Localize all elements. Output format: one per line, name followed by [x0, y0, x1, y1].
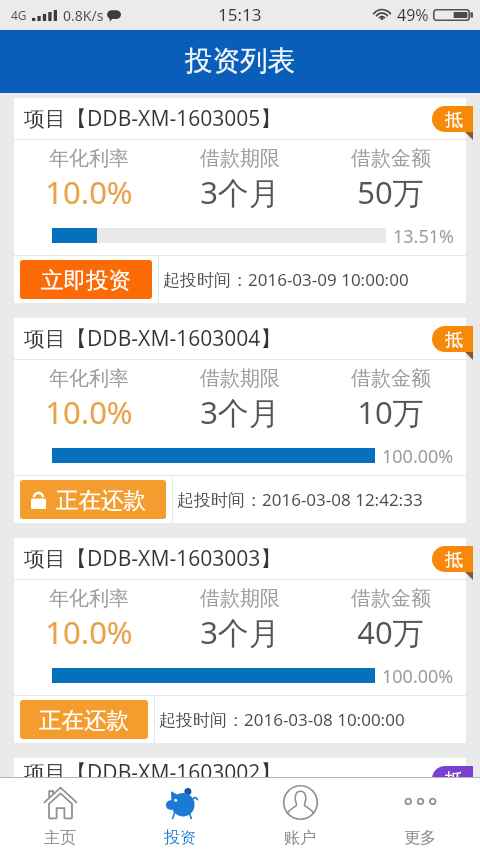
button[interactable]: Home: [0, 778, 120, 853]
staticText: 10万: [357, 391, 424, 433]
staticText: 49%: [397, 4, 429, 26]
staticText: 100.00%: [382, 444, 454, 466]
staticText: 年化利率: [49, 146, 129, 171]
staticText: 正在还款: [39, 706, 129, 734]
staticText: 起投时间：2016-03-08 10:00:00: [159, 708, 405, 731]
button[interactable]: 项目【DDB-XM-1603004】: [14, 318, 466, 523]
staticText: 40万: [357, 611, 424, 653]
staticText: 项目【DDB-XM-1603003】: [24, 544, 282, 573]
staticText: 借款金额: [351, 586, 431, 611]
button[interactable]: 项目【DDB-XM-1603002】: [14, 758, 466, 777]
staticText: 项目【DDB-XM-1603004】: [24, 324, 282, 353]
staticText: 3个月: [200, 611, 280, 653]
staticText: 3个月: [200, 391, 280, 433]
button[interactable]: Invest: [120, 778, 240, 853]
staticText: 借款期限: [200, 366, 280, 391]
button[interactable]: 正在还款: [20, 700, 148, 739]
button[interactable]: 立即投资: [20, 260, 152, 299]
staticText: 10.0%: [45, 611, 133, 653]
button[interactable]: Account: [240, 778, 360, 853]
staticText: 年化利率: [49, 586, 129, 611]
staticText: 13.51%: [393, 224, 454, 246]
staticText: 抵: [445, 109, 463, 132]
staticText: 0.8K/s: [63, 6, 104, 25]
staticText: 立即投资: [41, 266, 131, 294]
staticText: 4G: [11, 7, 27, 23]
staticText: 借款期限: [200, 146, 280, 171]
staticText: 50万: [357, 171, 424, 213]
staticText: 10.0%: [45, 391, 133, 433]
staticText: 投资: [164, 828, 196, 848]
staticText: 抵: [445, 769, 463, 785]
button[interactable]: 正在还款: [20, 480, 166, 519]
staticText: 主页: [44, 828, 76, 848]
staticText: 100.00%: [382, 664, 454, 686]
staticText: 借款金额: [351, 146, 431, 171]
staticText: 10.0%: [45, 171, 133, 213]
button[interactable]: 项目【DDB-XM-1603005】: [14, 98, 466, 303]
staticText: 15:13: [218, 3, 262, 26]
staticText: 抵: [445, 549, 463, 572]
staticText: 项目【DDB-XM-1603002】: [24, 758, 282, 777]
button[interactable]: More: [360, 778, 480, 853]
staticText: 项目【DDB-XM-1603005】: [24, 104, 282, 133]
staticText: 更多: [404, 828, 436, 848]
staticText: 正在还款: [56, 486, 146, 514]
staticText: 借款期限: [200, 586, 280, 611]
button[interactable]: 项目【DDB-XM-1603003】: [14, 538, 466, 743]
staticText: 年化利率: [49, 366, 129, 391]
staticText: 账户: [284, 828, 316, 848]
staticText: 抵: [445, 329, 463, 352]
staticText: 起投时间：2016-03-08 12:42:33: [177, 488, 423, 511]
staticText: 借款金额: [351, 366, 431, 391]
staticText: 3个月: [200, 171, 280, 213]
staticText: 投资列表: [185, 44, 295, 79]
staticText: 起投时间：2016-03-09 10:00:00: [163, 268, 409, 291]
